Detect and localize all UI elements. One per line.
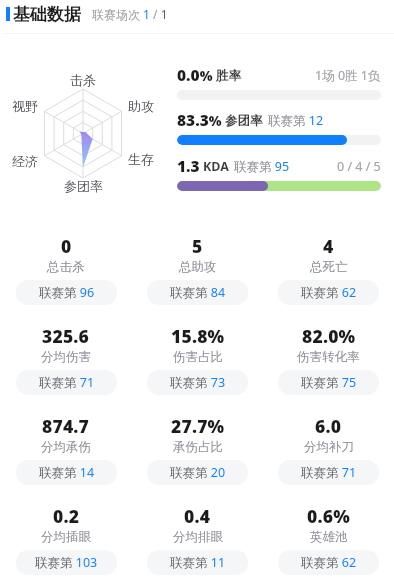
button[interactable]: 874.7 [0,414,132,490]
staticText: 总死亡 [310,259,348,275]
staticText: 承伤占比 [173,439,223,455]
button[interactable]: 82.0% [263,324,394,400]
button[interactable]: 4 [263,234,394,310]
staticText: 4 [323,234,334,258]
staticText: 联赛第 11 [170,554,226,571]
staticText: 联赛第 96 [39,284,95,301]
staticText: 联赛场次 1 / 1 [92,6,168,22]
staticText: 1.3 [177,155,200,176]
staticText: 联赛第 20 [170,464,226,481]
staticText: 英雄池 [310,529,348,545]
staticText: 基础数据 [13,4,81,24]
staticText: 5 [192,234,203,258]
staticText: 联赛第 71 [301,464,357,481]
staticText: 874.7 [42,414,90,438]
button[interactable]: 325.6 [0,324,132,400]
staticText: 总助攻 [179,259,217,275]
button[interactable]: 15.8% [132,324,263,400]
staticText: 0.4 [184,504,211,528]
button[interactable]: 5 [132,234,263,310]
staticText: 联赛第 95 [234,158,290,175]
staticText: 分均伤害 [41,349,91,365]
staticText: 击杀 [70,72,96,88]
staticText: 1场 0胜 1负 [315,67,381,84]
staticText: 联赛第 103 [35,554,98,571]
staticText: 联赛第 62 [301,554,357,571]
staticText: 325.6 [42,324,90,348]
staticText: 生存 [128,151,154,167]
staticText: 分均排眼 [173,529,223,545]
staticText: 联赛第 75 [301,374,357,391]
staticText: 助攻 [128,98,154,114]
staticText: 参团率 [64,178,103,194]
staticText: 0.6% [307,504,350,528]
staticText: 联赛第 12 [268,112,324,129]
staticText: 总击杀 [47,259,85,275]
button[interactable]: 6.0 [263,414,394,490]
staticText: 参团率 [225,113,263,129]
staticText: 胜率 [216,68,241,84]
staticText: 伤害占比 [173,349,223,365]
staticText: 6.0 [315,414,342,438]
staticText: 视野 [12,98,38,114]
staticText: 0 / 4 / 5 [337,158,381,175]
button[interactable]: 27.7% [132,414,263,490]
staticText: 分均承伤 [41,439,91,455]
button[interactable]: 0.4 [132,504,263,580]
staticText: 83.3% [177,109,222,130]
staticText: 联赛第 71 [39,374,95,391]
staticText: 15.8% [171,324,225,348]
staticText: 82.0% [302,324,356,348]
staticText: 联赛第 73 [170,374,226,391]
staticText: 经济 [12,153,38,169]
staticText: 分均插眼 [41,529,91,545]
staticText: 伤害转化率 [297,349,360,365]
staticText: 0.0% [177,64,213,85]
staticText: 联赛第 84 [170,284,226,301]
staticText: KDA [203,158,229,175]
staticText: 联赛第 14 [39,464,95,481]
staticText: 联赛第 62 [301,284,357,301]
button[interactable]: 0.6% [263,504,394,580]
staticText: 分均补刀 [304,439,354,455]
button[interactable]: 0 [0,234,132,310]
button[interactable]: 0.2 [0,504,132,580]
staticText: 0 [61,234,72,258]
staticText: 0.2 [53,504,80,528]
staticText: 27.7% [171,414,225,438]
